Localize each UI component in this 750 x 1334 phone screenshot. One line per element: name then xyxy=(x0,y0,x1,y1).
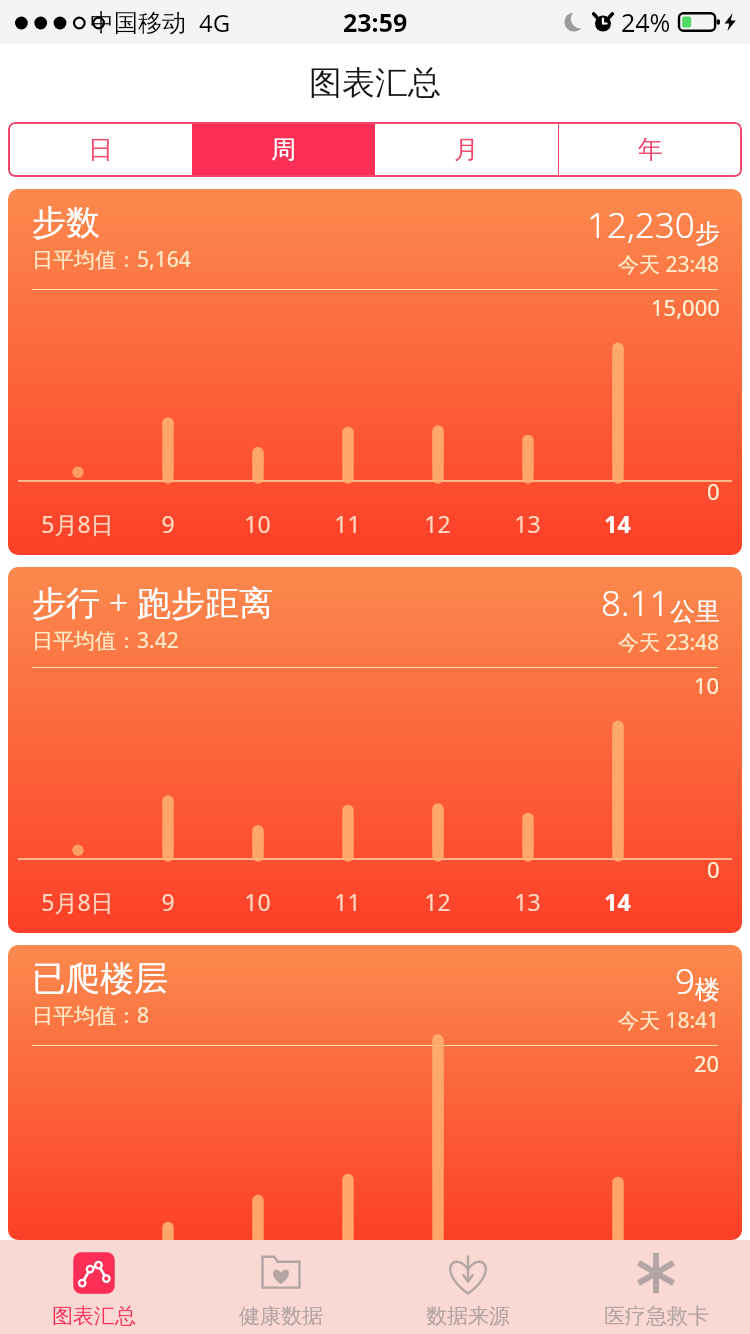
staticText: 日平均值：3.42 xyxy=(32,626,179,655)
staticText: 步 xyxy=(695,218,720,249)
staticText: 5月8日 xyxy=(41,886,114,917)
button[interactable]: 月 xyxy=(375,122,558,177)
staticText: 12 xyxy=(424,886,451,917)
staticText: 4G xyxy=(199,6,231,39)
staticText: 23:59 xyxy=(343,5,408,39)
staticText: 15,000 xyxy=(651,292,720,322)
other: 健康数据 xyxy=(253,1245,309,1301)
other: 数据来源 xyxy=(440,1245,496,1301)
staticText: 已爬楼层 xyxy=(32,957,168,1000)
staticText: 数据来源 xyxy=(426,1303,510,1329)
staticText: 14 xyxy=(604,508,631,539)
button[interactable]: 周 xyxy=(192,122,375,177)
staticText: 医疗急救卡 xyxy=(604,1303,709,1329)
button[interactable]: 年 xyxy=(559,122,742,177)
staticText: 今天 23:48 xyxy=(618,250,720,279)
staticText: 10 xyxy=(694,670,720,700)
staticText: 8.11 xyxy=(601,579,670,627)
button[interactable]: 图表汇总 xyxy=(0,1240,187,1334)
staticText: 图表汇总 xyxy=(309,62,441,104)
button[interactable]: 数据来源 xyxy=(374,1240,562,1334)
button[interactable]: 日 xyxy=(8,122,192,177)
staticText: 公里 xyxy=(670,596,720,627)
staticText: 9 xyxy=(161,508,175,539)
staticText: 0 xyxy=(707,476,720,506)
staticText: 健康数据 xyxy=(239,1303,323,1329)
staticText: 周 xyxy=(271,134,296,165)
button[interactable]: 步数 xyxy=(8,189,742,555)
staticText: 楼 xyxy=(695,974,720,1005)
button[interactable]: 医疗急救卡 xyxy=(562,1240,750,1334)
staticText: 中国移动 xyxy=(90,8,186,38)
button[interactable]: 健康数据 xyxy=(187,1240,374,1334)
staticText: 今天 23:48 xyxy=(618,628,720,657)
button[interactable]: 步行 + 跑步距离 xyxy=(8,567,742,933)
staticText: 日平均值：5,164 xyxy=(32,245,191,274)
staticText: 日 xyxy=(88,134,113,165)
staticText: 12 xyxy=(424,508,451,539)
staticText: 11 xyxy=(334,508,361,539)
staticText: 9 xyxy=(161,886,175,917)
staticText: 13 xyxy=(514,886,541,917)
staticText: 5月8日 xyxy=(41,508,114,539)
staticText: 10 xyxy=(244,508,271,539)
other: 医疗急救卡 xyxy=(628,1245,684,1301)
staticText: 今天 18:41 xyxy=(618,1006,720,1035)
staticText: 24% xyxy=(621,5,671,39)
staticText: 9 xyxy=(675,957,695,1005)
staticText: 图表汇总 xyxy=(52,1303,136,1329)
staticText: 13 xyxy=(514,508,541,539)
staticText: 10 xyxy=(244,886,271,917)
button[interactable]: 已爬楼层 xyxy=(8,945,742,1240)
staticText: 日平均值：8 xyxy=(32,1001,150,1030)
staticText: 月 xyxy=(454,134,479,165)
staticText: 20 xyxy=(694,1048,720,1078)
staticText: 0 xyxy=(707,854,720,884)
staticText: 年 xyxy=(638,134,663,165)
staticText: 11 xyxy=(334,886,361,917)
staticText: 步行 + 跑步距离 xyxy=(32,579,274,625)
other: 图表汇总 xyxy=(66,1245,122,1301)
staticText: 14 xyxy=(604,886,631,917)
staticText: 步数 xyxy=(32,201,100,244)
staticText: 12,230 xyxy=(587,201,695,249)
